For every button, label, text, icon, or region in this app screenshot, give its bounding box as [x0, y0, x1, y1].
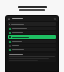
button[interactable]: [8, 40, 56, 43]
button[interactable]: [8, 31, 56, 34]
button[interactable]: [8, 22, 56, 26]
button[interactable]: Menu: [8, 18, 10, 20]
button[interactable]: [8, 27, 56, 30]
button[interactable]: [8, 44, 56, 47]
button[interactable]: [8, 48, 56, 51]
button[interactable]: [8, 53, 56, 62]
button[interactable]: Menu: [6, 16, 58, 21]
button[interactable]: [8, 35, 56, 39]
